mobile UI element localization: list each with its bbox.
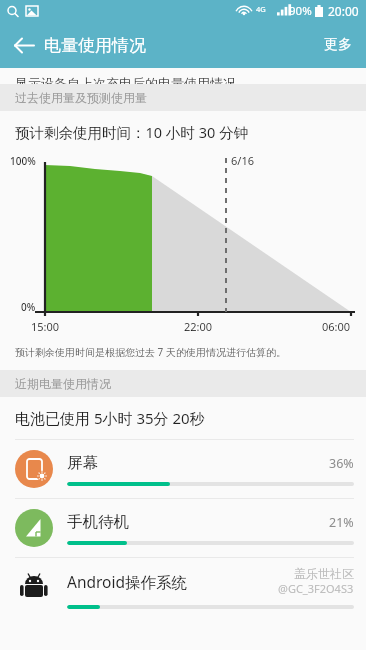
staticText: 100% (10, 154, 36, 168)
staticText: 90% (289, 3, 312, 19)
staticText: 近期电量使用情况 (15, 376, 111, 391)
staticText: 22:00 (184, 319, 213, 334)
staticText: Android操作系统 (67, 571, 188, 592)
staticText: 20:00 (328, 3, 359, 19)
staticText: 21% (329, 514, 354, 531)
staticText: 0% (21, 300, 36, 314)
staticText: 06:00 (322, 319, 351, 334)
staticText: 6/16 (231, 153, 254, 168)
staticText: 盖乐世社区 (294, 566, 354, 581)
button[interactable]: 手机待机 (0, 499, 366, 557)
staticText: 4G (256, 4, 266, 14)
staticText: 15:00 (31, 319, 60, 334)
staticText: 过去使用量及预测使用量 (15, 90, 147, 105)
staticText: 显示设备自上次充电后的电量使用情况 (15, 75, 236, 84)
staticText: @GC_3F2O4S3 (278, 581, 354, 596)
staticText: 更多 (324, 36, 352, 54)
staticText: 屏幕 (67, 453, 98, 473)
button[interactable]: Back (6, 27, 42, 63)
button[interactable]: 屏幕 (0, 440, 366, 498)
staticText: 预计剩余使用时间是根据您过去 7 天的使用情况进行估算的。 (15, 345, 286, 359)
staticText: 预计剩余使用时间：10 小时 30 分钟 (15, 122, 248, 142)
staticText: 电池已使用 5小时 35分 20秒 (15, 408, 205, 428)
button[interactable]: 更多 (316, 26, 360, 64)
staticText: 36% (329, 455, 354, 472)
staticText: 电量使用情况 (44, 35, 146, 56)
staticText: 手机待机 (67, 512, 129, 532)
button[interactable]: Android操作系统 (0, 558, 366, 616)
